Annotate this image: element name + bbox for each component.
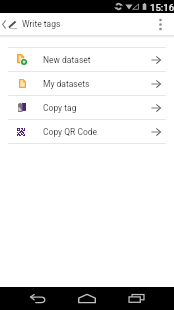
button[interactable]: Back bbox=[22, 287, 54, 310]
staticText: Copy tag bbox=[43, 103, 77, 113]
button[interactable]: My datasets bbox=[0, 72, 174, 95]
staticText: Write tags bbox=[22, 19, 61, 29]
button[interactable]: Navigate up bbox=[0, 13, 18, 35]
button[interactable]: New dataset bbox=[0, 48, 174, 71]
button[interactable]: More options bbox=[152, 13, 168, 35]
button[interactable]: Copy QR Code bbox=[0, 120, 174, 143]
staticText: 15:16 bbox=[150, 2, 174, 13]
staticText: New dataset bbox=[43, 55, 91, 65]
staticText: Copy QR Code bbox=[43, 127, 98, 137]
button[interactable]: Home bbox=[71, 287, 103, 310]
button[interactable]: Copy tag bbox=[0, 96, 174, 119]
staticText: My datasets bbox=[43, 79, 90, 89]
button[interactable]: Recent apps bbox=[120, 287, 152, 310]
